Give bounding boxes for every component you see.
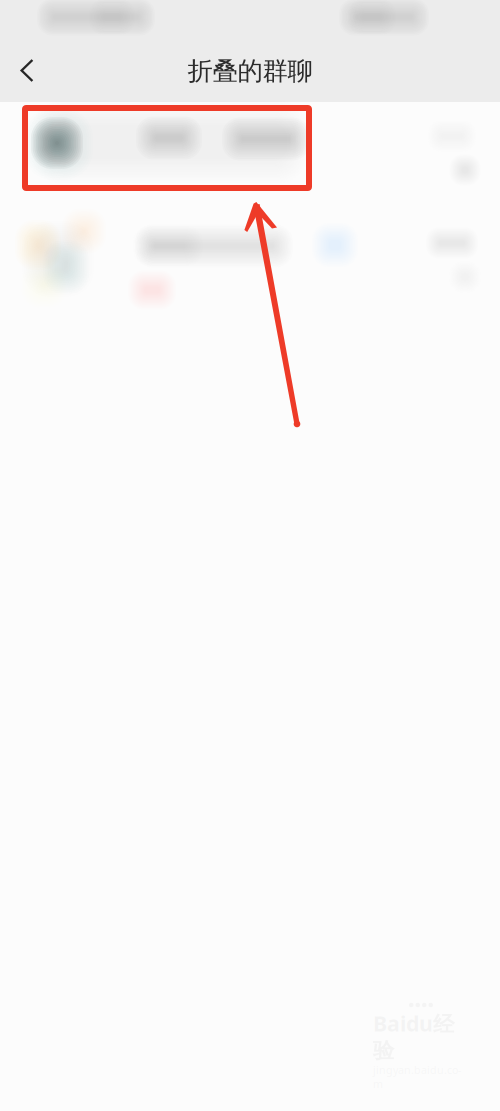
button[interactable]: Back (0, 46, 46, 96)
staticText: Baidu经验 (373, 1009, 454, 1064)
button[interactable] (0, 187, 500, 293)
button[interactable] (0, 102, 500, 187)
staticText: 折叠的群聊 (187, 55, 312, 86)
